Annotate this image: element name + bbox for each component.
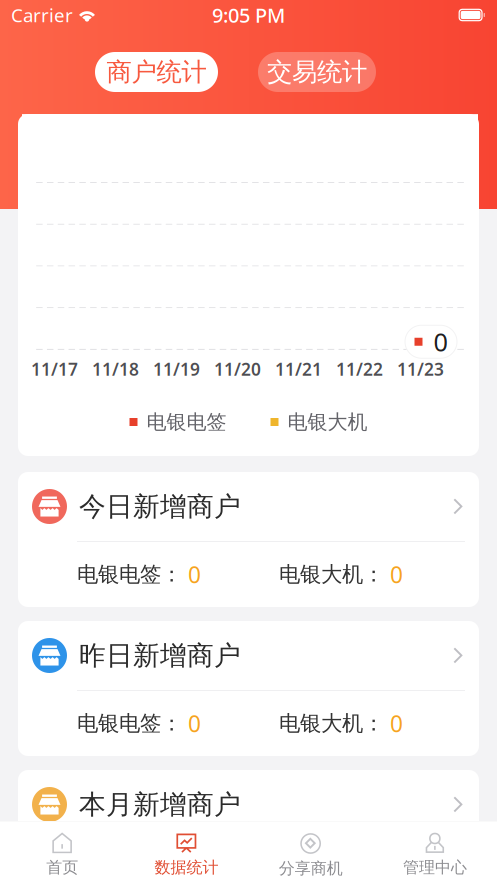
staticText: 交易统计	[267, 56, 367, 87]
staticText: 11/23	[397, 357, 444, 380]
staticText: 电银大机：	[279, 561, 384, 588]
staticText: 11/22	[336, 357, 383, 380]
staticText: 11/18	[92, 357, 139, 380]
button[interactable]: 本月新增商户	[18, 770, 479, 883]
staticText: 管理中心	[403, 857, 467, 877]
staticText: 0	[384, 708, 403, 738]
staticText: 分享商机	[279, 858, 343, 878]
staticText: 11/17	[31, 357, 78, 380]
staticText: 0	[182, 857, 201, 883]
staticText: Carrier	[11, 3, 73, 27]
button[interactable]: 首页	[0, 821, 124, 883]
staticText: 数据统计	[154, 857, 218, 877]
staticText: 商户统计	[106, 56, 206, 87]
staticText: 昨日新增商户	[79, 639, 241, 672]
button[interactable]: 数据统计	[124, 821, 248, 883]
staticText: 首页	[46, 857, 78, 877]
button[interactable]: 管理中心	[373, 821, 497, 883]
staticText: 今日新增商户	[79, 490, 241, 523]
staticText: 11/21	[275, 357, 322, 380]
staticText: 本月新增商户	[79, 788, 241, 821]
button[interactable]: 交易统计	[258, 52, 376, 92]
staticText: 11/19	[153, 357, 200, 380]
button[interactable]: 商户统计	[95, 52, 218, 92]
staticText: 电银电签：	[77, 710, 182, 737]
staticText: 0	[384, 559, 403, 589]
staticText: 11/20	[214, 357, 261, 380]
button[interactable]: 今日新增商户	[18, 472, 479, 607]
staticText: 电银大机：	[279, 710, 384, 737]
staticText: 0	[433, 325, 447, 358]
staticText: 0	[182, 708, 201, 738]
staticText: 电银电签：	[77, 859, 182, 883]
staticText: 电银电签：	[77, 561, 182, 588]
staticText: 9:05 PM	[212, 2, 285, 28]
staticText: 电银电签	[146, 410, 226, 434]
staticText: 电银大机	[287, 410, 367, 434]
button[interactable]: 分享商机	[248, 821, 373, 883]
staticText: 0	[182, 559, 201, 589]
staticText: 电银大机：	[279, 859, 384, 883]
button[interactable]: 昨日新增商户	[18, 621, 479, 756]
